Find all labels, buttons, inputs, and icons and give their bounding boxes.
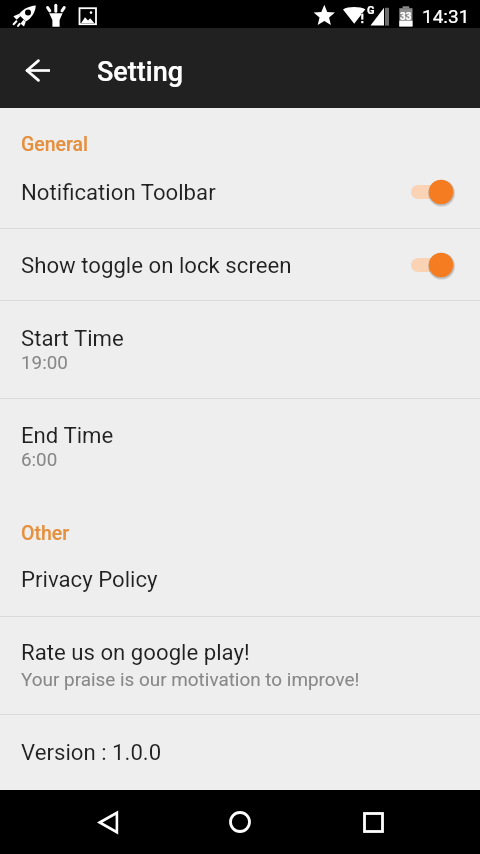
staticText: Show toggle on lock screen <box>21 252 411 278</box>
button[interactable]: Back <box>84 798 132 846</box>
staticText: Rate us on google play! <box>21 639 250 665</box>
staticText: End Time <box>21 422 114 448</box>
button[interactable]: Version : 1.0.0 <box>0 715 480 790</box>
button[interactable]: Rate us on google play! <box>0 617 480 714</box>
staticText: Start Time <box>21 325 124 351</box>
staticText: Version : 1.0.0 <box>21 739 162 765</box>
button[interactable]: Home <box>216 798 264 846</box>
staticText: 14:31 <box>422 5 470 27</box>
button[interactable]: Back <box>14 46 62 94</box>
button[interactable]: Recents <box>349 798 397 846</box>
staticText: General <box>21 133 89 156</box>
staticText: 19:00 <box>21 352 68 374</box>
button[interactable]: Start Time <box>0 301 480 398</box>
button[interactable]: Toggle <box>411 252 453 278</box>
button[interactable]: End Time <box>0 399 480 496</box>
staticText: Notification Toolbar <box>21 179 411 205</box>
staticText: Privacy Policy <box>21 566 158 592</box>
staticText: G <box>367 4 375 17</box>
staticText: Your praise is our motivation to improve… <box>21 668 360 690</box>
staticText: Other <box>21 522 70 545</box>
button[interactable]: Show toggle on lock screen <box>0 229 480 300</box>
staticText: 6:00 <box>21 449 58 471</box>
staticText: 33 <box>400 11 412 23</box>
button[interactable]: Notification Toolbar <box>0 155 480 228</box>
staticText: Setting <box>97 56 184 88</box>
button[interactable]: Toggle <box>411 179 453 205</box>
button[interactable]: Privacy Policy <box>0 543 480 616</box>
